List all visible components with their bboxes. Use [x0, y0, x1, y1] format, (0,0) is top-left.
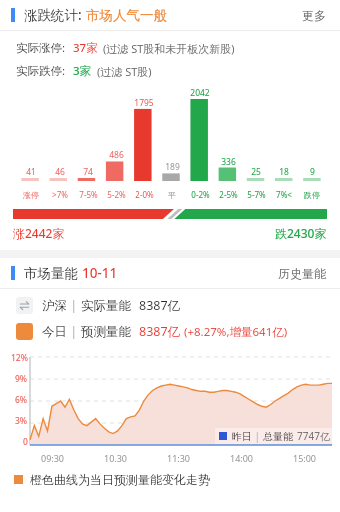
- staticText: 9: [310, 166, 315, 178]
- staticText: 1795: [134, 97, 154, 109]
- staticText: 11:30: [167, 452, 191, 464]
- staticText: 336: [221, 156, 236, 168]
- staticText: 0-2%: [191, 189, 210, 200]
- staticText: 跌停: [304, 190, 320, 200]
- staticText: 涨跌统计:: [24, 6, 86, 24]
- staticText: (过滤 ST股和未开板次新股): [103, 41, 235, 56]
- staticText: |: [67, 297, 81, 314]
- staticText: 10-11: [82, 264, 118, 282]
- staticText: 74: [83, 166, 93, 178]
- staticText: 跌2430家: [275, 225, 327, 241]
- staticText: 实际量能: [81, 298, 131, 314]
- button[interactable]: 今日: [0, 323, 340, 340]
- staticText: 3家: [73, 63, 92, 79]
- staticText: 7-5%: [79, 189, 98, 200]
- staticText: 沪深: [42, 298, 67, 314]
- staticText: 5-7%: [247, 189, 266, 200]
- staticText: 5-2%: [107, 189, 126, 200]
- button[interactable]: 沪深切换: [0, 297, 340, 314]
- staticText: 15:00: [293, 452, 317, 464]
- staticText: 9%: [15, 373, 28, 385]
- staticText: 实际涨停:: [16, 40, 66, 56]
- staticText: 09:30: [41, 452, 65, 464]
- staticText: 历史量能: [278, 266, 326, 281]
- staticText: |: [67, 323, 81, 340]
- staticText: 8387亿: [139, 297, 181, 314]
- staticText: 6%: [15, 394, 28, 406]
- staticText: 涨2442家: [13, 225, 65, 241]
- staticText: 486: [109, 149, 124, 161]
- staticText: 2-0%: [135, 189, 154, 200]
- staticText: 涨停: [23, 190, 39, 200]
- staticText: 189: [165, 161, 180, 173]
- staticText: 14:00: [230, 452, 254, 464]
- staticText: 平: [168, 190, 176, 200]
- staticText: 今日: [42, 324, 67, 340]
- staticText: |: [252, 429, 263, 443]
- staticText: 0: [23, 436, 28, 448]
- staticText: >7%: [52, 189, 68, 200]
- staticText: 46: [55, 166, 65, 178]
- staticText: 18: [279, 166, 289, 178]
- staticText: 41: [26, 166, 36, 178]
- staticText: 37家: [73, 40, 98, 56]
- staticText: 3%: [15, 415, 28, 427]
- staticText: 昨日: [232, 430, 252, 443]
- button[interactable]: 历史量能: [275, 263, 329, 284]
- staticText: 橙色曲线为当日预测量能变化走势: [30, 472, 210, 487]
- staticText: (过滤 ST股): [97, 64, 152, 79]
- staticText: 2-5%: [219, 189, 238, 200]
- staticText: 25: [251, 166, 261, 178]
- staticText: 10.30: [104, 452, 128, 464]
- staticText: 预测量能: [81, 324, 131, 340]
- staticText: 市场量能: [24, 264, 82, 282]
- staticText: 实际跌停:: [16, 63, 66, 79]
- staticText: 更多: [302, 8, 326, 23]
- staticText: 总量能: [263, 430, 293, 443]
- staticText: 7747亿: [297, 429, 330, 443]
- other: 沪深切换: [16, 297, 33, 314]
- staticText: 8387亿: [139, 323, 181, 340]
- staticText: 市场人气一般: [86, 7, 167, 24]
- staticText: 12%: [11, 352, 28, 364]
- staticText: 7%<: [276, 189, 292, 200]
- staticText: (+8.27%,增量641亿): [181, 324, 288, 340]
- staticText: 2042: [190, 87, 210, 99]
- button[interactable]: 更多: [299, 5, 329, 26]
